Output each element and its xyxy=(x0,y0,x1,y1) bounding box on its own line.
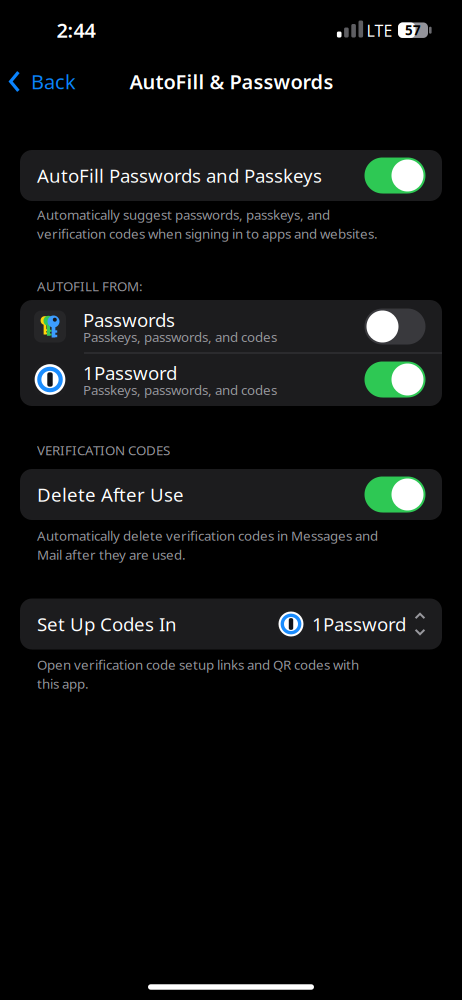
button[interactable]: 1Password xyxy=(364,361,425,397)
button[interactable]: Set Up Codes In xyxy=(20,598,442,649)
staticText: Passkeys, passwords, and codes xyxy=(83,328,277,346)
staticText: Delete After Use xyxy=(37,482,184,507)
button[interactable]: Passwords xyxy=(20,300,442,353)
staticText: Set Up Codes In xyxy=(37,612,177,636)
staticText: AUTOFILL FROM: xyxy=(37,277,143,295)
button[interactable]: 1Password xyxy=(20,353,442,406)
button[interactable]: AutoFill Passwords and Passkeys xyxy=(364,157,425,193)
button[interactable]: Delete After Use xyxy=(20,469,442,520)
button[interactable]: Back xyxy=(9,68,76,95)
staticText: Automatically suggest passwords, passkey… xyxy=(37,206,330,223)
staticText: Passwords xyxy=(83,307,175,332)
staticText: 57 xyxy=(405,21,421,39)
staticText: Back xyxy=(31,68,76,95)
staticText: LTE xyxy=(366,20,392,41)
staticText: 1Password xyxy=(83,360,177,385)
staticText: VERIFICATION CODES xyxy=(37,441,170,459)
button[interactable]: Passwords xyxy=(364,308,425,344)
staticText: AutoFill Passwords and Passkeys xyxy=(37,163,322,188)
staticText: Open verification code setup links and Q… xyxy=(37,656,359,673)
staticText: Mail after they are used. xyxy=(37,546,186,563)
button[interactable]: AutoFill Passwords and Passkeys xyxy=(20,150,442,201)
staticText: verification codes when signing in to ap… xyxy=(37,225,378,242)
staticText: Passkeys, passwords, and codes xyxy=(83,381,277,399)
staticText: Automatically delete verification codes … xyxy=(37,527,378,544)
staticText: 2:44 xyxy=(56,17,95,43)
staticText: AutoFill & Passwords xyxy=(129,68,333,95)
staticText: 1Password xyxy=(312,612,406,636)
staticText: this app. xyxy=(37,675,89,692)
button[interactable]: Delete After Use xyxy=(364,476,425,512)
